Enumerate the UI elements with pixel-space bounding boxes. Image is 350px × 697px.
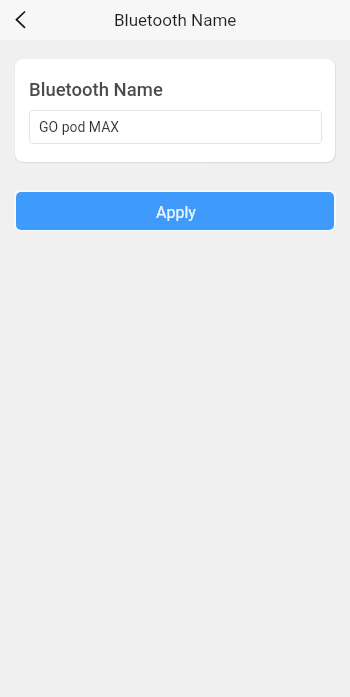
button[interactable]: GO pod MAX: [29, 110, 322, 144]
staticText: Bluetooth Name: [29, 79, 163, 101]
button[interactable]: Back: [0, 0, 40, 40]
staticText: Bluetooth Name: [114, 10, 237, 30]
staticText: GO pod MAX: [39, 119, 120, 135]
staticText: Apply: [156, 203, 196, 222]
button[interactable]: Apply: [16, 192, 334, 230]
